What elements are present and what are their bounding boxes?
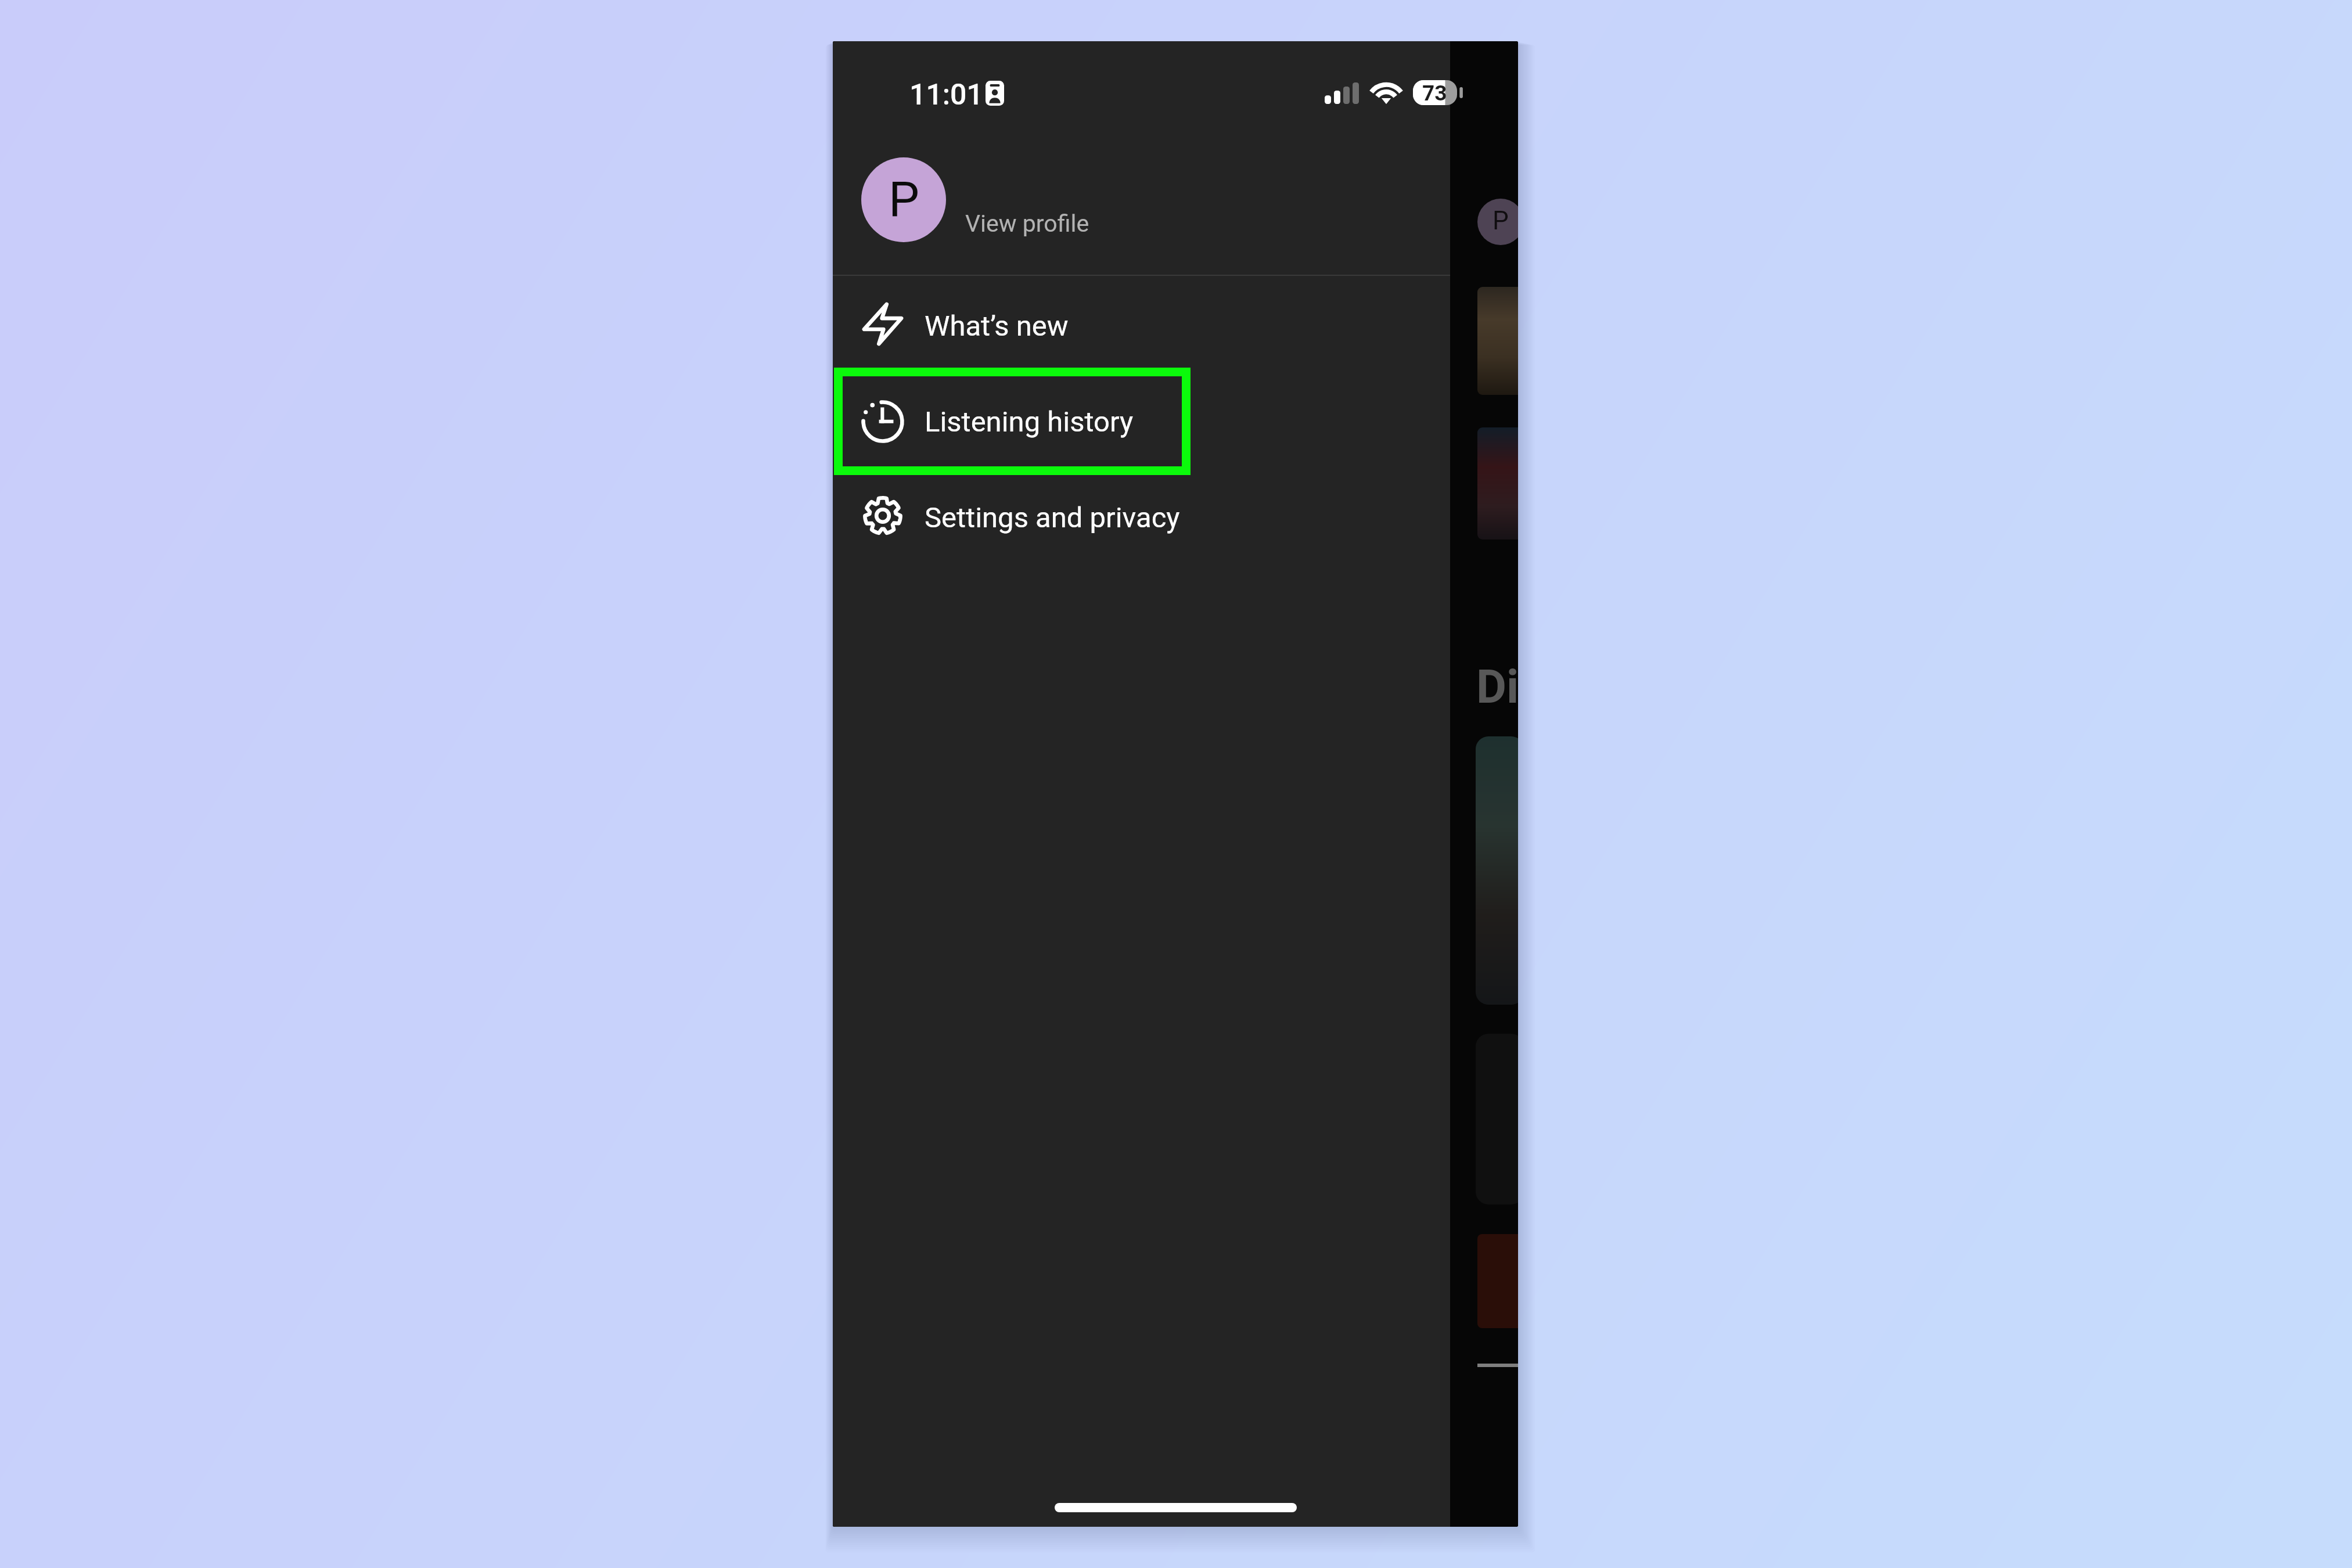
button[interactable]: Settings and privacy [833,467,1450,563]
other: What’s new [862,302,904,346]
staticText: Listening history [925,405,1134,438]
staticText: 73 [1422,81,1447,106]
button[interactable]: P [833,125,1450,275]
staticText: Settings and privacy [925,501,1180,534]
button[interactable]: What’s new [833,276,1450,372]
staticText: P [889,171,919,228]
other: Listening history [862,398,904,442]
other: Settings and privacy [862,494,904,538]
staticText: What’s new [925,310,1069,343]
staticText: Dis [1476,660,1518,714]
button[interactable]: Listening history [833,372,1450,467]
staticText: View profile [965,210,1089,238]
staticText: P [1493,206,1509,236]
staticText: 11:01 [909,78,983,112]
